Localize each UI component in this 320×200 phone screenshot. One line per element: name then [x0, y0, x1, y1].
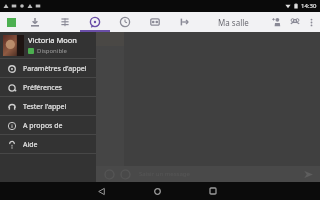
button[interactable]: Back [92, 182, 110, 200]
button[interactable]: Tab 1 [20, 12, 50, 32]
button[interactable]: People [286, 13, 304, 31]
button[interactable]: A propos de [0, 116, 96, 135]
button[interactable]: More options [304, 15, 318, 29]
staticText: Aide [23, 140, 38, 150]
button[interactable]: Emoji [104, 169, 115, 180]
staticText: Tester l'appel [23, 102, 67, 112]
button[interactable]: Home [148, 182, 166, 200]
staticText: Préférences [23, 83, 62, 93]
staticText: A propos de [23, 121, 63, 131]
button[interactable]: Tab 6 [170, 12, 200, 32]
button[interactable]: Send [302, 168, 314, 180]
button[interactable]: Menu [2, 13, 20, 31]
button[interactable]: Tab 2 [50, 12, 80, 32]
button[interactable]: Tab 3 [80, 12, 110, 32]
staticText: Paramètres d'appel [23, 64, 87, 74]
staticText: 14:30 [301, 2, 317, 10]
button[interactable]: Add person [268, 13, 286, 31]
button[interactable]: Victoria Moon [0, 32, 96, 58]
staticText: Ma salle [218, 17, 249, 28]
button[interactable]: Tab 5 [140, 12, 170, 32]
button[interactable]: Recent apps [204, 182, 222, 200]
button[interactable]: Tester l'appel [0, 97, 96, 116]
button[interactable]: Préférences [0, 78, 96, 97]
staticText: Disponible [37, 47, 68, 55]
button[interactable]: Attach [120, 169, 131, 180]
button[interactable]: Tab 4 [110, 12, 140, 32]
staticText: Victoria Moon [28, 35, 77, 45]
button[interactable]: Paramètres d'appel [0, 59, 96, 78]
button[interactable]: Aide [0, 135, 96, 154]
